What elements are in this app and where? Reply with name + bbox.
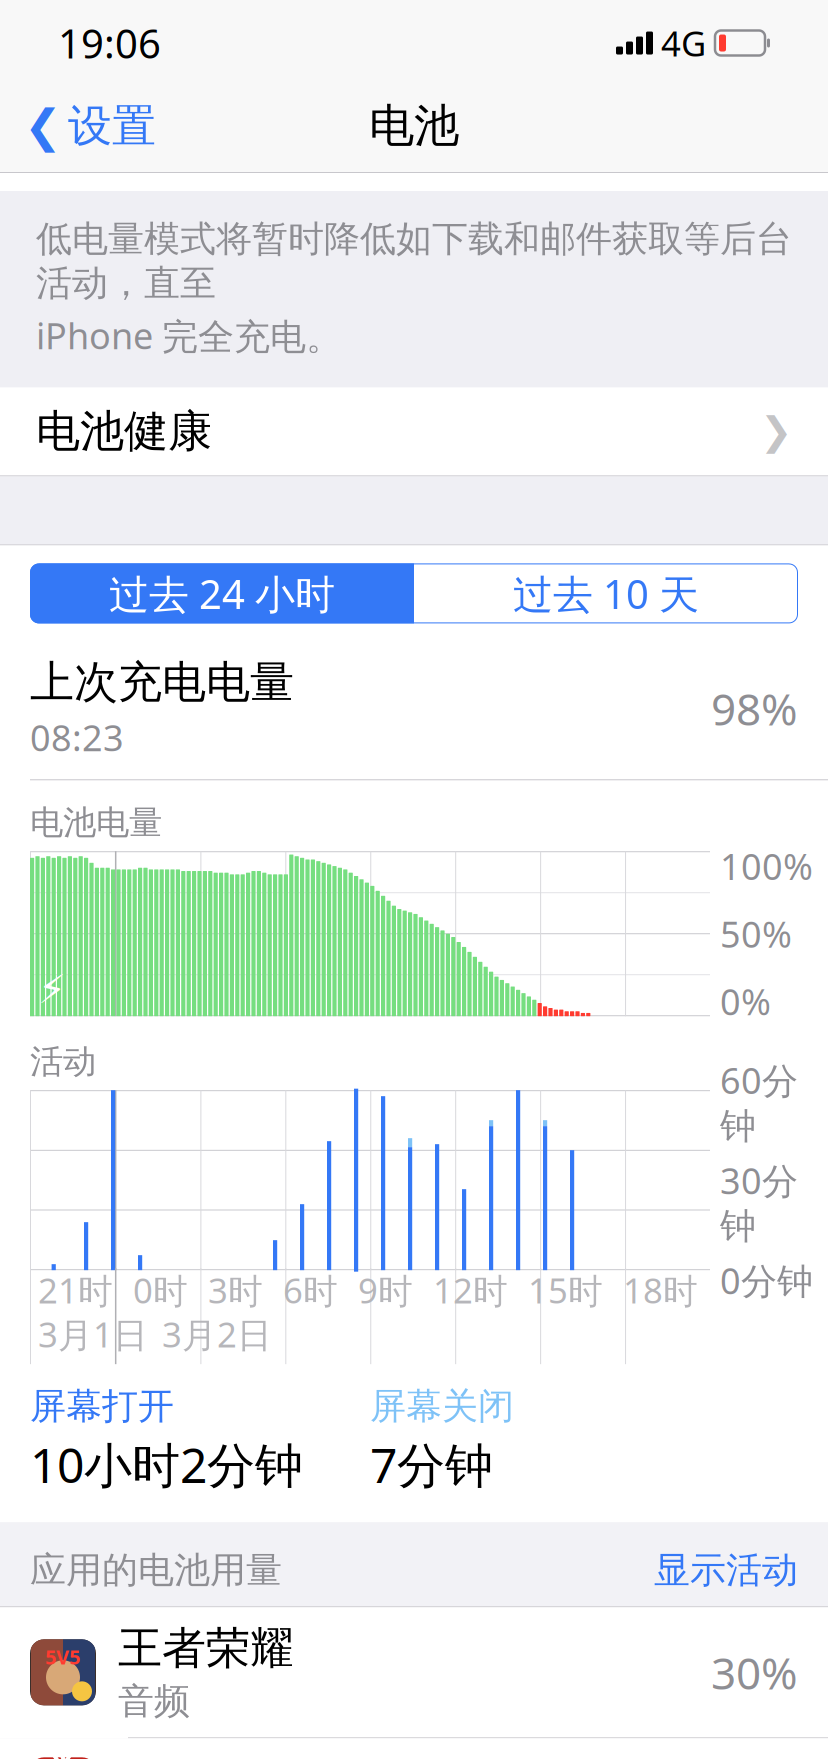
button[interactable]: 过去 10 天 [414, 563, 798, 623]
staticText: 100% [720, 842, 813, 890]
button[interactable]: 过去 24 小时 [30, 563, 414, 623]
staticText: 30分钟 [720, 1156, 798, 1248]
staticText: 7分钟 [370, 1432, 493, 1496]
button[interactable]: 学习 [0, 1738, 828, 1759]
staticText: 低电量模式将暂时降低如下载和邮件获取等后台活动，直至 [36, 217, 792, 305]
staticText: 18时 [623, 1267, 698, 1313]
button[interactable]: 电池健康 [0, 387, 828, 475]
staticText: 3月2日 [162, 1311, 272, 1357]
staticText: 屏幕关闭 [370, 1384, 514, 1428]
staticText: 6时 [283, 1267, 338, 1313]
staticText: 电池电量 [30, 802, 162, 843]
staticText: 4G [661, 20, 706, 66]
staticText: 3月1日 [38, 1311, 148, 1357]
staticText: 活动 [30, 1041, 96, 1082]
staticText: 98% [711, 679, 798, 737]
staticText: 电池健康 [36, 404, 212, 458]
button[interactable]: 显示活动 [654, 1548, 798, 1592]
staticText: iPhone 完全充电。 [36, 311, 342, 359]
staticText: 0时 [133, 1267, 188, 1313]
staticText: 显示活动 [654, 1548, 798, 1592]
staticText: 王者荣耀 [118, 1621, 294, 1675]
staticText: 30% [711, 1643, 798, 1701]
staticText: 60分钟 [720, 1056, 798, 1148]
staticText: 上次充电电量 [30, 655, 294, 709]
button[interactable]: ❮ [14, 91, 166, 161]
staticText: 设置 [68, 99, 156, 153]
staticText: 过去 24 小时 [109, 567, 335, 620]
staticText: 08:23 [30, 713, 124, 761]
staticText: 0% [720, 977, 771, 1025]
staticText: 12时 [433, 1267, 508, 1313]
staticText: 学习 [45, 1748, 80, 1759]
staticText: 50% [720, 910, 792, 958]
staticText: 音频 [118, 1679, 190, 1723]
staticText: 5V5 [45, 1643, 80, 1670]
button[interactable]: 5V5 [0, 1607, 828, 1738]
staticText: 0分钟 [720, 1256, 813, 1304]
staticText: ❮ [24, 100, 62, 152]
staticText: 15时 [528, 1267, 603, 1313]
staticText: 电池 [369, 98, 459, 154]
staticText: 10小时2分钟 [30, 1432, 303, 1496]
staticText: 屏幕打开 [30, 1384, 174, 1428]
staticText: 19:06 [58, 16, 161, 69]
staticText: 3时 [208, 1267, 263, 1313]
staticText: 21时 [38, 1267, 113, 1313]
staticText: 应用的电池用量 [30, 1548, 282, 1592]
staticText: ❯ [760, 409, 792, 453]
staticText: 过去 10 天 [513, 567, 699, 620]
staticText: ⚡︎ [38, 967, 66, 1012]
staticText: 9时 [358, 1267, 413, 1313]
